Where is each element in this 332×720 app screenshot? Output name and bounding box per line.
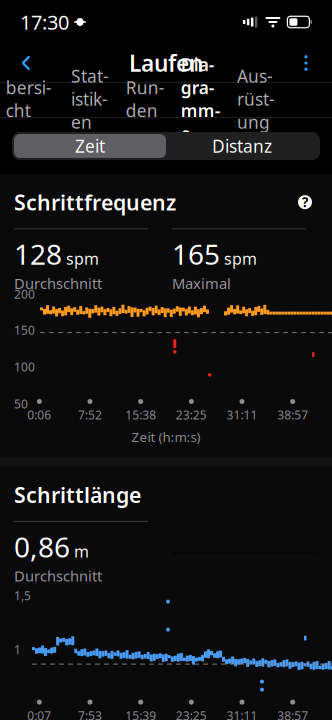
staticText: 31:11 bbox=[226, 407, 257, 423]
button[interactable]: Runden bbox=[125, 83, 166, 117]
staticText: 0,86 bbox=[14, 528, 70, 565]
staticText: Zeit bbox=[75, 134, 105, 157]
button[interactable]: Back bbox=[6, 44, 46, 82]
staticText: 165 bbox=[172, 235, 220, 272]
staticText: 38:57 bbox=[277, 708, 308, 720]
staticText: Schrittfrequenz bbox=[14, 188, 176, 216]
staticText: 100 bbox=[14, 359, 35, 375]
staticText: bersicht bbox=[6, 76, 52, 122]
staticText: ? bbox=[302, 193, 308, 211]
staticText: 15:38 bbox=[125, 407, 156, 423]
staticText: 23:25 bbox=[176, 708, 207, 720]
button[interactable]: Distanz bbox=[166, 134, 318, 158]
staticText: Diagramme bbox=[181, 53, 221, 145]
staticText: spm bbox=[224, 248, 257, 269]
staticText: Maximal bbox=[172, 273, 231, 293]
staticText: 50 bbox=[14, 396, 28, 412]
staticText: 1 bbox=[14, 642, 21, 657]
staticText: Distanz bbox=[212, 134, 272, 157]
staticText: m bbox=[74, 541, 89, 562]
button[interactable]: Ausrüstung bbox=[235, 83, 277, 117]
button[interactable]: Diagramme bbox=[180, 83, 221, 117]
button[interactable]: Statistiken bbox=[69, 83, 111, 117]
staticText: 128 bbox=[14, 235, 62, 272]
staticText: Durchschnitt bbox=[14, 566, 102, 586]
staticText: Laufen bbox=[129, 48, 203, 78]
staticText: spm bbox=[66, 248, 99, 269]
staticText: Ausrüstung bbox=[237, 64, 275, 134]
staticText: 0:06 bbox=[27, 407, 51, 423]
button[interactable]: bersicht bbox=[2, 83, 55, 117]
staticText: 38:57 bbox=[277, 407, 308, 423]
button[interactable]: More options bbox=[286, 44, 326, 82]
staticText: 0:07 bbox=[27, 708, 51, 720]
staticText: 1,5 bbox=[14, 588, 31, 603]
staticText: 150 bbox=[14, 322, 35, 338]
staticText: Statistiken bbox=[71, 64, 109, 134]
staticText: Durchschnitt bbox=[14, 273, 102, 293]
staticText: 17:30 bbox=[20, 9, 69, 35]
staticText: 31:11 bbox=[226, 708, 257, 720]
staticText: 23:25 bbox=[176, 407, 207, 423]
staticText: 7:53 bbox=[78, 708, 102, 720]
button[interactable]: Help bbox=[292, 189, 318, 215]
staticText: Zeit (h:m:s) bbox=[131, 428, 200, 446]
button[interactable]: Zeit bbox=[14, 134, 166, 158]
staticText: Runden bbox=[126, 76, 165, 122]
staticText: Schrittlänge bbox=[14, 481, 141, 509]
staticText: 15:39 bbox=[125, 708, 156, 720]
staticText: 200 bbox=[14, 286, 35, 302]
staticText: 7:52 bbox=[78, 407, 102, 423]
